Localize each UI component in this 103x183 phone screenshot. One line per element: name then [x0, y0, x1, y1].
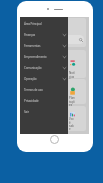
staticText: Sair — [24, 110, 29, 114]
staticText: Área Principal — [24, 22, 42, 26]
button[interactable]: Área Principal — [20, 18, 68, 29]
button[interactable]: Ferramentas — [20, 40, 68, 51]
button[interactable] — [21, 50, 86, 78]
staticText: Comunicação — [24, 66, 42, 70]
button[interactable]: Privacidade — [20, 95, 68, 106]
staticText: Termos de uso — [24, 88, 43, 92]
staticText: Finanças — [24, 33, 36, 37]
button[interactable]: Sair — [20, 106, 68, 117]
staticText: Privacidade — [24, 99, 39, 103]
staticText: Ferramentas — [24, 44, 41, 48]
button[interactable]: Termos de uso — [20, 84, 68, 95]
staticText: Notícias Assessoria — [69, 71, 75, 87]
button[interactable]: Comunicação — [20, 62, 68, 73]
other: Home — [50, 135, 59, 144]
staticText: Você sabe — [69, 117, 75, 130]
button[interactable] — [21, 106, 86, 131]
staticText: Operação — [24, 77, 37, 81]
button[interactable] — [21, 79, 86, 104]
button[interactable]: Empreendimento — [20, 51, 68, 62]
button[interactable]: Finanças — [20, 29, 68, 40]
staticText: Empreendimento — [24, 55, 47, 59]
button[interactable]: Buscar — [21, 18, 86, 47]
button[interactable]: Operação — [20, 73, 68, 84]
staticText: Plantações — [69, 96, 75, 106]
button[interactable]: Buscar — [29, 35, 84, 44]
